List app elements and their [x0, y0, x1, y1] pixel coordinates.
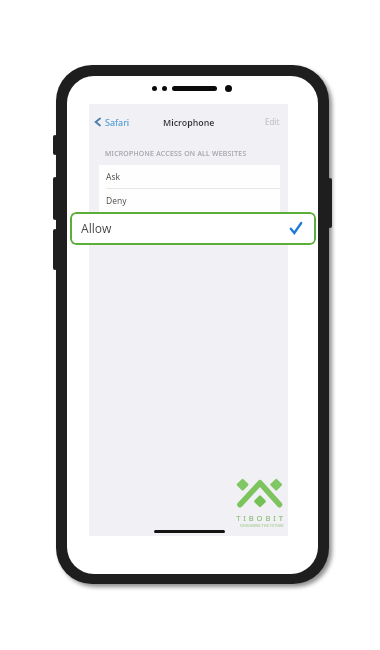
- button[interactable]: Ask: [99, 165, 280, 188]
- button[interactable]: Edit: [262, 113, 283, 130]
- button[interactable]: Allow: [99, 213, 280, 236]
- staticText: MICROPHONE ACCESS ON ALL WEBSITES: [105, 149, 247, 158]
- button[interactable]: Deny: [99, 189, 280, 212]
- staticText: DESIGNING THE FUTURE: [236, 523, 288, 528]
- staticText: Ask: [106, 171, 121, 183]
- staticText: Allow: [106, 219, 128, 231]
- staticText: Deny: [106, 195, 127, 207]
- staticText: TIBOBIT: [235, 513, 287, 523]
- staticText: Microphone: [163, 117, 215, 129]
- button[interactable]: Safari: [92, 113, 133, 131]
- button[interactable]: Allow: [70, 212, 316, 245]
- staticText: Edit: [265, 116, 280, 127]
- staticText: Allow: [81, 220, 112, 236]
- staticText: Safari: [105, 116, 130, 128]
